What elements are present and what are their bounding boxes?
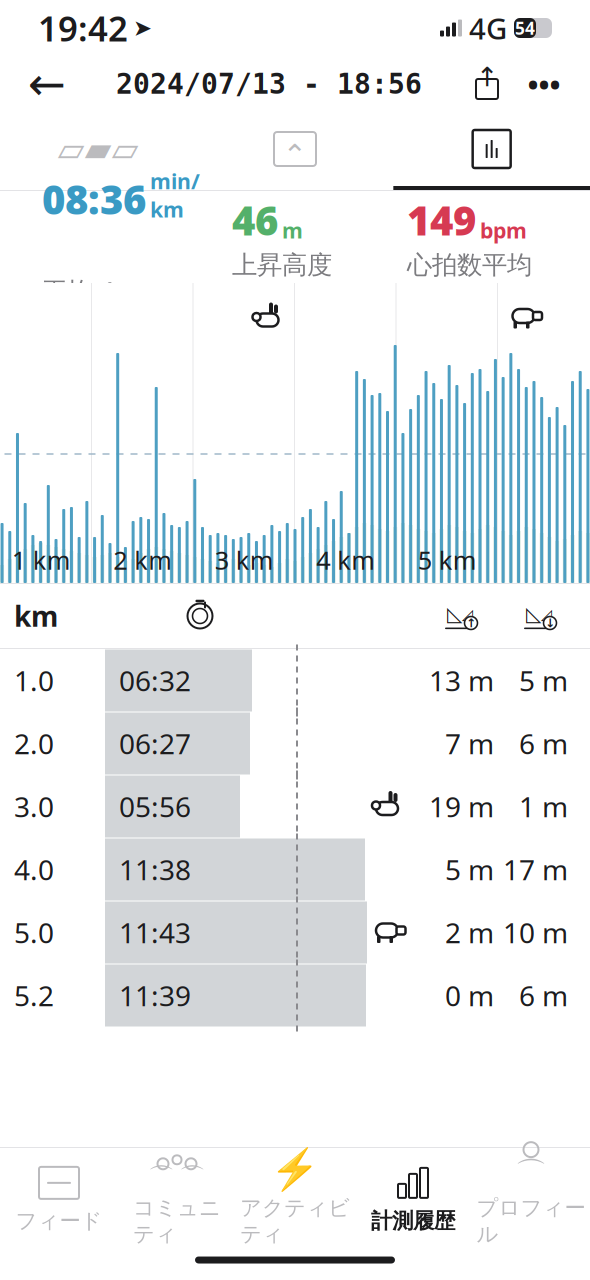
staticText: min/km — [150, 167, 200, 223]
button[interactable]: Photos — [197, 112, 393, 190]
staticText: ◺ — [526, 603, 541, 626]
staticText: ➤ — [133, 15, 152, 41]
staticText: プロフィール — [476, 1195, 585, 1247]
staticText: 1 km — [12, 543, 71, 577]
staticText: 6 m — [519, 725, 568, 762]
staticText: 149 — [407, 193, 476, 246]
staticText: ⌒ — [179, 1161, 206, 1194]
button[interactable]: More options — [514, 56, 574, 112]
staticText: 11:39 — [119, 977, 191, 1014]
staticText: 5.0 — [14, 914, 54, 951]
staticText: 54 — [515, 16, 535, 39]
button[interactable]: 11:39 — [0, 964, 590, 1027]
staticText: 上昇高度 — [232, 249, 332, 281]
button[interactable]: フィード — [0, 1154, 118, 1234]
staticText: 2 m — [445, 914, 494, 951]
staticText: ◿ — [462, 606, 473, 622]
button[interactable]: 11:43 — [0, 901, 590, 964]
staticText: 5 m — [519, 662, 568, 699]
staticText: フィード — [15, 1208, 102, 1234]
staticText: 2024/07/13 - 18:56 — [116, 68, 422, 100]
staticText: ↓ — [545, 616, 555, 630]
staticText: ↑ — [466, 616, 476, 630]
staticText: ⌃ — [282, 138, 307, 172]
button[interactable]: 計測履歴 — [354, 1154, 472, 1234]
staticText: bpm — [480, 216, 527, 244]
staticText: ⚡ — [270, 1147, 320, 1193]
button[interactable]: 06:32 — [0, 649, 590, 712]
staticText: ⌒ — [515, 1154, 547, 1193]
staticText: 5 km — [418, 543, 477, 577]
staticText: km — [14, 597, 58, 635]
staticText: 2 km — [113, 543, 172, 577]
staticText: 19 m — [429, 788, 494, 825]
button[interactable]: ⌒ — [118, 1141, 236, 1247]
staticText: 心拍数平均 — [407, 249, 532, 281]
staticText: ◿ — [541, 606, 552, 622]
staticText: ← — [28, 58, 66, 110]
staticText: 計測履歴 — [371, 1208, 455, 1234]
staticText: アクティビティ — [240, 1195, 350, 1247]
staticText: ••• — [527, 64, 560, 103]
staticText: 4.0 — [14, 851, 54, 888]
staticText: 06:32 — [119, 662, 191, 699]
staticText: 05:56 — [119, 788, 191, 825]
staticText: ↑ — [476, 62, 498, 92]
staticText: 1.0 — [14, 662, 54, 699]
staticText: 46 — [232, 193, 278, 246]
button[interactable]: Back — [16, 56, 78, 112]
button[interactable]: Share — [460, 56, 514, 112]
staticText: ⌒ — [148, 1161, 175, 1194]
staticText: 5.2 — [14, 977, 54, 1014]
staticText: 4G — [469, 8, 507, 47]
button[interactable]: Charts — [393, 112, 590, 190]
staticText: 6 m — [519, 977, 568, 1014]
button[interactable]: Map — [0, 112, 197, 190]
staticText: 08:36 — [42, 172, 146, 225]
button[interactable]: 06:27 — [0, 712, 590, 775]
staticText: 17 m — [503, 851, 568, 888]
staticText: 4 km — [316, 543, 375, 577]
staticText: 19:42 — [38, 5, 128, 51]
staticText: 2.0 — [14, 725, 54, 762]
button[interactable]: ⚡ — [236, 1141, 354, 1247]
staticText: コミュニティ — [133, 1195, 221, 1247]
staticText: 11:38 — [119, 851, 191, 888]
staticText: 1 m — [519, 788, 568, 825]
staticText: 06:27 — [119, 725, 191, 762]
staticText: 10 m — [503, 914, 568, 951]
staticText: m — [282, 216, 303, 244]
button[interactable]: 11:38 — [0, 838, 590, 901]
staticText: 3.0 — [14, 788, 54, 825]
staticText: ▱▰▱ — [58, 129, 139, 169]
staticText: 13 m — [429, 662, 494, 699]
staticText: 平均ペース — [42, 276, 169, 307]
staticText: 5 m — [445, 851, 494, 888]
button[interactable]: ⌒ — [472, 1141, 590, 1247]
staticText: 3 km — [215, 543, 274, 577]
staticText: ◺ — [447, 603, 462, 626]
staticText: 7 m — [445, 725, 494, 762]
staticText: 11:43 — [119, 914, 191, 951]
button[interactable]: 05:56 — [0, 775, 590, 838]
staticText: 0 m — [445, 977, 494, 1014]
